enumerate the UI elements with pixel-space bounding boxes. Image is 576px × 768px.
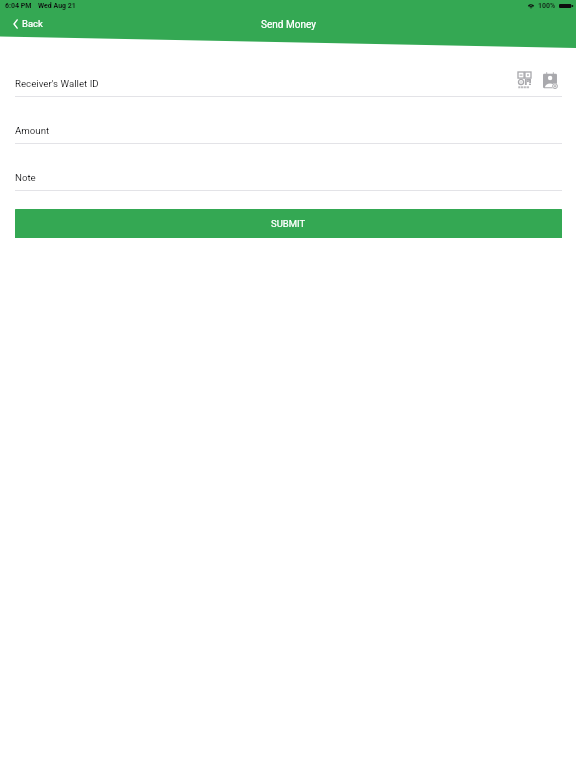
staticText: 100% xyxy=(538,2,556,10)
staticText: Amount xyxy=(15,125,50,136)
button[interactable]: Amount xyxy=(15,119,562,144)
staticText: SUBMIT xyxy=(271,218,306,229)
button[interactable]: Note xyxy=(15,166,562,191)
staticText: Wed Aug 21 xyxy=(38,2,76,10)
button[interactable]: Back xyxy=(0,14,53,33)
button[interactable]: Receiver's Wallet ID xyxy=(15,72,562,97)
button[interactable]: Choose from contacts xyxy=(539,70,562,91)
staticText: Receiver's Wallet ID xyxy=(15,78,99,89)
button[interactable]: SUBMIT xyxy=(15,209,562,238)
staticText: Send Money xyxy=(261,19,316,31)
staticText: 6:04 PM xyxy=(5,2,32,10)
staticText: Note xyxy=(15,172,36,183)
staticText: Back xyxy=(22,18,43,29)
button[interactable]: Scan QR code xyxy=(514,70,535,91)
